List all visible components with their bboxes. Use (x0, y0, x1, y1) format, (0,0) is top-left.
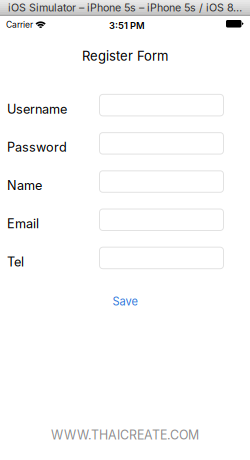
staticText: 3:51 PM (109, 20, 145, 31)
staticText: Carrier (6, 19, 33, 30)
staticText: Register Form (82, 48, 168, 64)
button[interactable]: Name (99, 171, 223, 192)
staticText: Username (7, 101, 67, 117)
button[interactable]: Tel (99, 247, 223, 269)
staticText: WWW.THAICREATE.COM (51, 427, 199, 442)
staticText: Save (112, 295, 137, 308)
staticText: iOS Simulator – iPhone 5s – iPhone 5s / … (8, 1, 242, 14)
button[interactable]: Username (99, 94, 223, 116)
button[interactable]: Email (99, 209, 223, 230)
staticText: Password (7, 140, 67, 155)
staticText: Tel (7, 254, 24, 269)
button[interactable]: Save (94, 291, 156, 311)
button[interactable]: Password (99, 133, 223, 154)
staticText: Name (7, 178, 42, 193)
staticText: Email (7, 216, 39, 231)
